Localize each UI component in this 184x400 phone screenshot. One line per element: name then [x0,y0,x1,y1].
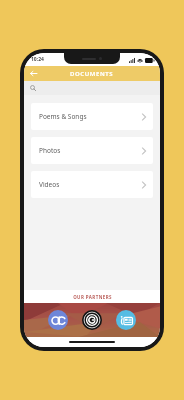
staticText: Videos [39,180,60,189]
button[interactable]: Search [24,81,160,95]
button[interactable]: Poems & Songs [31,103,153,130]
button[interactable]: Photos [31,137,153,164]
staticText: 10:24 [31,56,44,63]
button[interactable]: Partner G [82,310,102,330]
button[interactable]: Videos [31,171,153,198]
button[interactable]: Partner news [116,310,136,330]
staticText: DOCUMENTS [70,70,114,78]
button[interactable]: Partner ac [48,310,68,330]
staticText: OUR PARTNERS [73,294,112,300]
staticText: Photos [39,146,61,155]
staticText: Poems & Songs [39,112,87,121]
button[interactable]: Back [28,68,39,79]
